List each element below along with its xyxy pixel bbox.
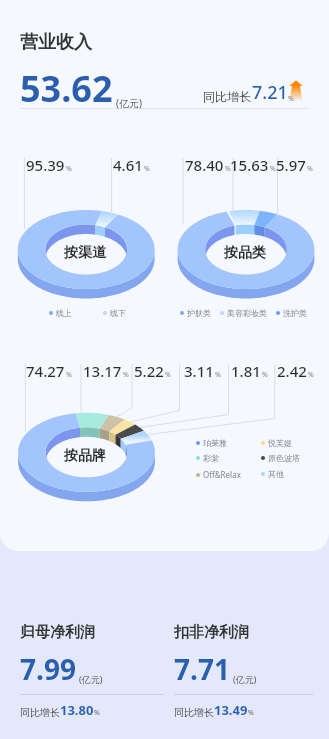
staticText: 15.63 — [230, 155, 269, 175]
staticText: (亿元) — [233, 673, 257, 685]
staticText: 悦芙媞 — [268, 438, 292, 448]
staticText: 13.17 — [83, 361, 122, 381]
staticText: (亿元) — [116, 96, 142, 110]
staticText: 2.42 — [277, 361, 307, 381]
staticText: 1.81 — [231, 361, 261, 381]
staticText: 53.62 — [20, 64, 113, 113]
staticText: 线下 — [110, 308, 126, 318]
staticText: % — [215, 370, 221, 380]
staticText: (亿元) — [79, 673, 103, 685]
staticText: 5.22 — [134, 361, 164, 381]
staticText: % — [165, 370, 171, 380]
staticText: 扣非净利润 — [174, 623, 249, 642]
staticText: 原色波塔 — [268, 453, 300, 463]
staticText: 13.49 — [214, 701, 248, 719]
staticText: 珀莱雅 — [203, 438, 227, 448]
staticText: % — [248, 708, 254, 718]
staticText: % — [270, 164, 276, 174]
staticText: 7.21 — [252, 80, 288, 105]
staticText: % — [144, 164, 150, 174]
staticText: % — [262, 370, 268, 380]
staticText: % — [225, 164, 231, 174]
staticText: % — [66, 370, 72, 380]
staticText: % — [308, 370, 314, 380]
staticText: 同比增长 — [174, 706, 214, 719]
staticText: 78.40 — [185, 155, 224, 175]
staticText: 按品类 — [224, 244, 266, 262]
staticText: % — [123, 370, 129, 380]
staticText: % — [66, 164, 72, 174]
staticText: 4.61 — [113, 155, 143, 175]
staticText: 按渠道 — [64, 244, 106, 262]
staticText: 74.27 — [26, 361, 65, 381]
staticText: 7.71 — [174, 650, 230, 688]
staticText: % — [94, 708, 100, 718]
staticText: 13.80 — [60, 701, 94, 719]
staticText: 归母净利润 — [20, 623, 95, 642]
staticText: 同比增长 — [20, 706, 60, 719]
staticText: 5.97 — [276, 155, 306, 175]
staticText: 95.39 — [26, 155, 65, 175]
staticText: 护肤类 — [187, 308, 211, 318]
staticText: % — [288, 94, 294, 104]
staticText: 其他 — [268, 469, 284, 479]
staticText: 3.11 — [184, 361, 214, 381]
staticText: 按品牌 — [64, 447, 106, 465]
staticText: % — [307, 164, 313, 174]
staticText: 线上 — [56, 308, 72, 318]
staticText: 7.99 — [20, 650, 76, 688]
staticText: 营业收入 — [20, 31, 92, 54]
staticText: 洗护类 — [283, 308, 307, 318]
staticText: 彩棠 — [203, 453, 219, 463]
staticText: Off&Relax — [203, 469, 241, 480]
staticText: 同比增长 — [203, 89, 251, 104]
staticText: 美容彩妆类 — [227, 308, 267, 318]
